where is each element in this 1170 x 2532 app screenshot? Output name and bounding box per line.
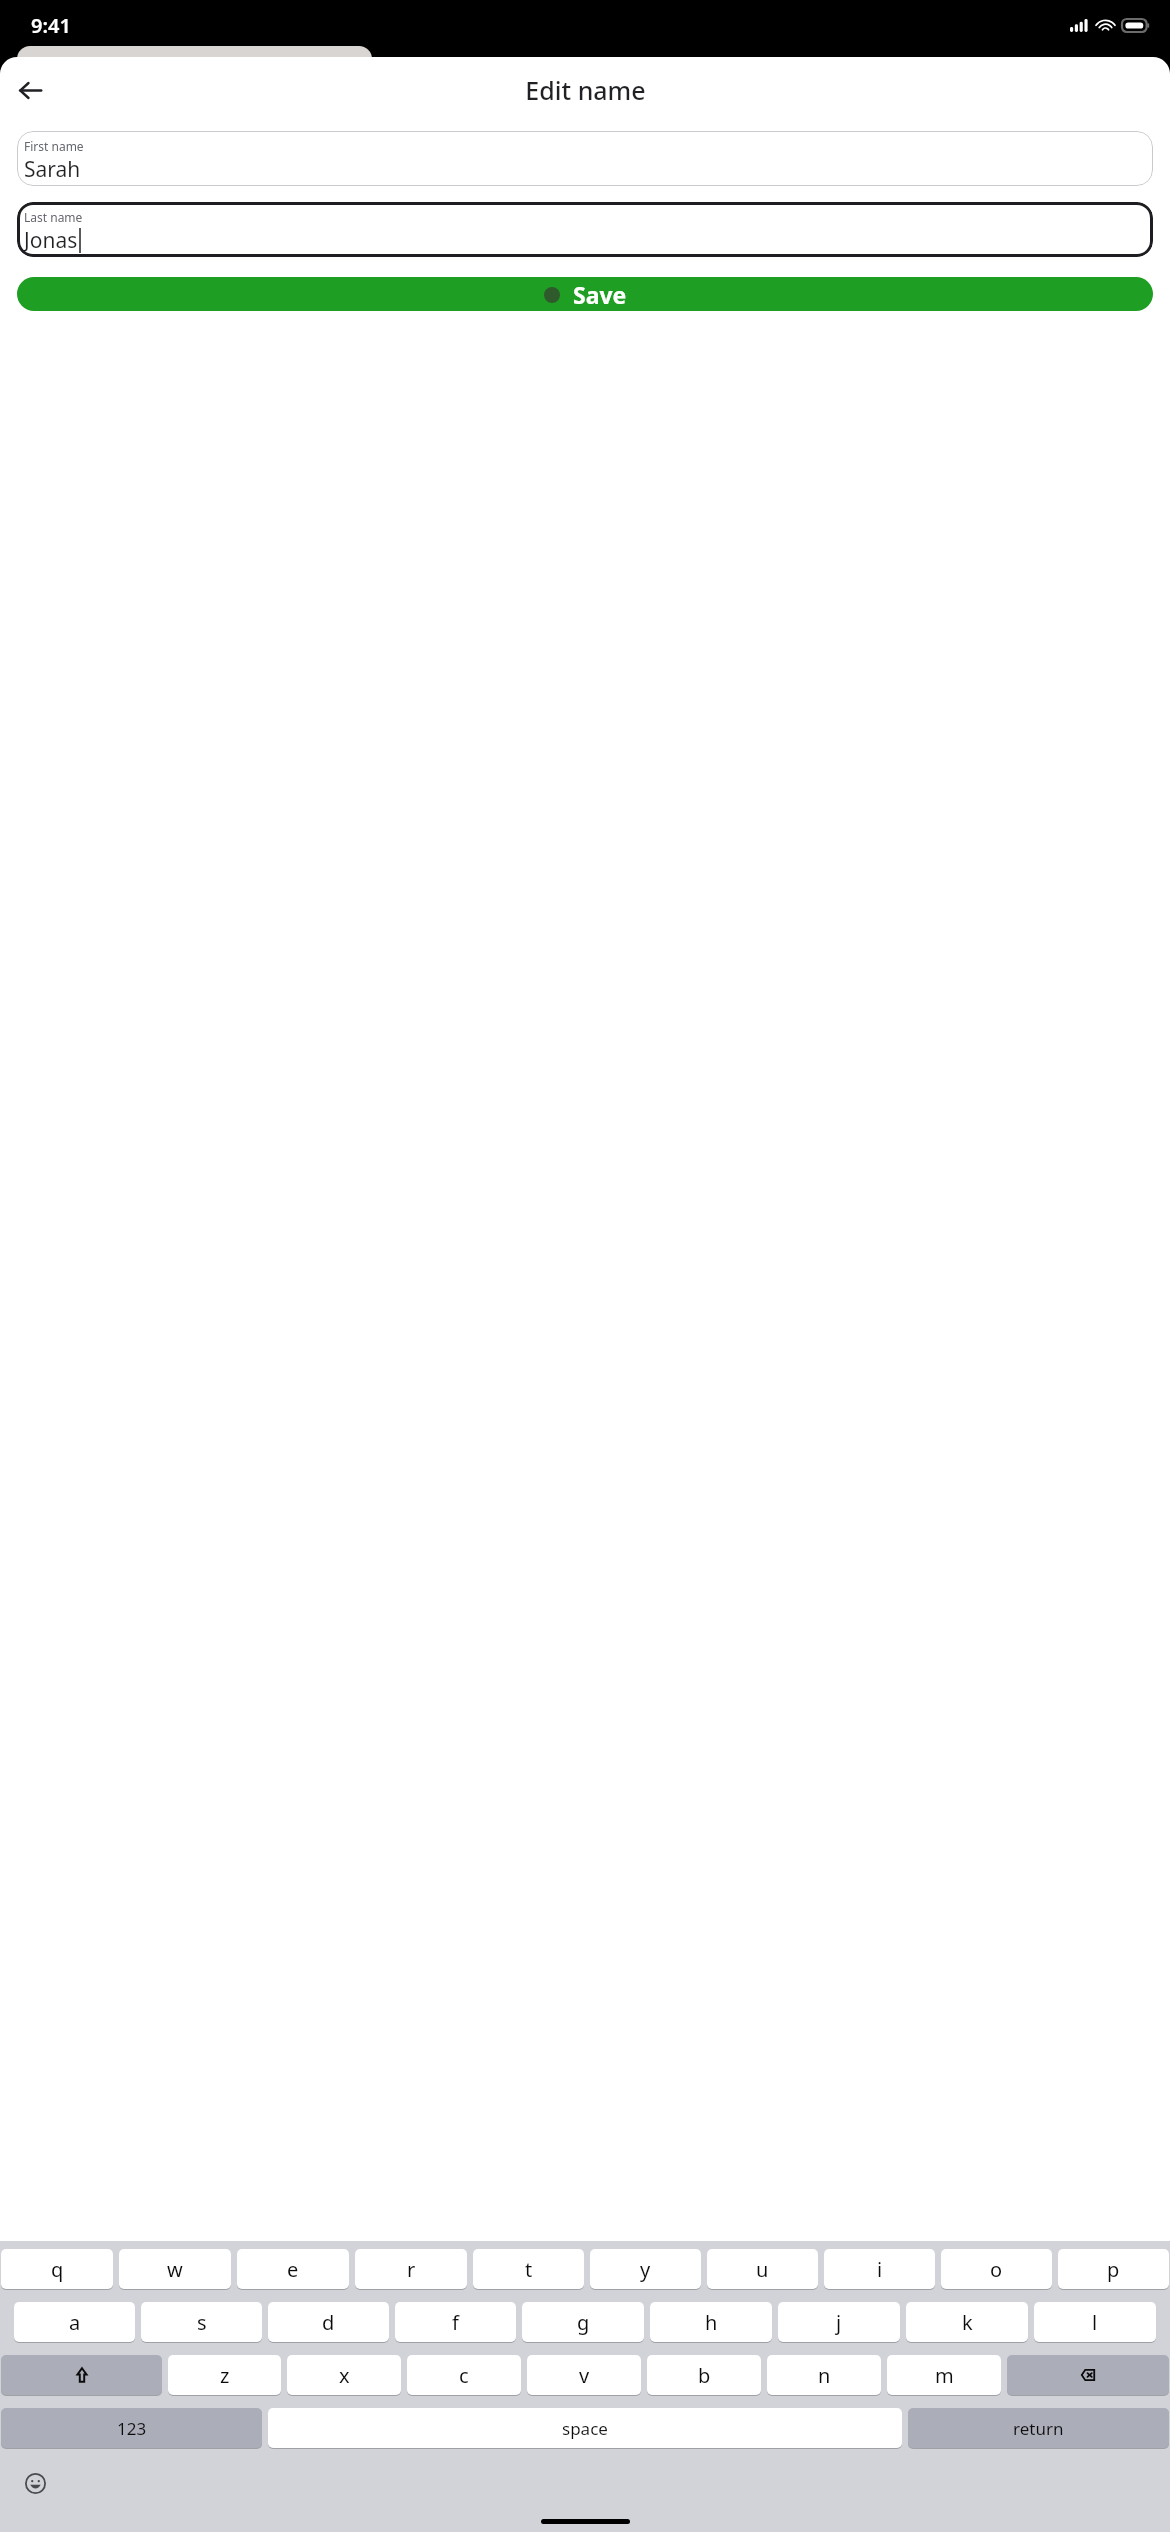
- button[interactable]: i: [824, 2249, 935, 2289]
- staticText: y: [640, 2256, 651, 2283]
- staticText: v: [579, 2362, 590, 2389]
- button[interactable]: x: [287, 2355, 401, 2395]
- staticText: g: [577, 2309, 590, 2336]
- staticText: Jonas: [24, 226, 78, 255]
- staticText: First name: [24, 138, 84, 154]
- staticText: f: [452, 2309, 459, 2336]
- button[interactable]: Save: [17, 277, 1153, 311]
- button[interactable]: e: [237, 2249, 349, 2289]
- button[interactable]: k: [906, 2302, 1028, 2342]
- staticText: w: [167, 2256, 183, 2283]
- button[interactable]: d: [268, 2302, 389, 2342]
- button[interactable]: n: [767, 2355, 881, 2395]
- staticText: m: [935, 2362, 954, 2389]
- staticText: h: [705, 2309, 718, 2336]
- staticText: b: [698, 2362, 711, 2389]
- button[interactable]: q: [1, 2249, 113, 2289]
- staticText: j: [836, 2309, 842, 2336]
- button[interactable]: Back: [5, 65, 55, 115]
- button[interactable]: return: [908, 2408, 1169, 2448]
- staticText: Sarah: [24, 155, 81, 184]
- button[interactable]: c: [407, 2355, 521, 2395]
- button[interactable]: First name: [17, 131, 1153, 186]
- button[interactable]: r: [355, 2249, 467, 2289]
- button[interactable]: o: [941, 2249, 1052, 2289]
- staticText: c: [459, 2362, 469, 2389]
- staticText: return: [1013, 2417, 1064, 2440]
- staticText: x: [339, 2362, 350, 2389]
- button[interactable]: l: [1034, 2302, 1156, 2342]
- button[interactable]: y: [590, 2249, 701, 2289]
- staticText: 123: [117, 2417, 147, 2440]
- button[interactable]: a: [14, 2302, 135, 2342]
- staticText: Last name: [24, 209, 83, 225]
- button[interactable]: f: [395, 2302, 516, 2342]
- staticText: t: [525, 2256, 533, 2283]
- button[interactable]: u: [707, 2249, 818, 2289]
- button[interactable]: g: [522, 2302, 644, 2342]
- staticText: space: [562, 2417, 608, 2440]
- button[interactable]: m: [887, 2355, 1001, 2395]
- staticText: r: [407, 2256, 416, 2283]
- button[interactable]: z: [168, 2355, 281, 2395]
- staticText: p: [1107, 2256, 1120, 2283]
- button[interactable]: space: [268, 2408, 902, 2448]
- staticText: n: [818, 2362, 831, 2389]
- staticText: i: [877, 2256, 883, 2283]
- staticText: q: [51, 2256, 64, 2283]
- staticText: z: [220, 2362, 230, 2389]
- staticText: Save: [573, 279, 627, 310]
- button[interactable]: t: [473, 2249, 584, 2289]
- button[interactable]: Last name: [17, 202, 1153, 257]
- staticText: s: [197, 2309, 207, 2336]
- button[interactable]: Backspace: [1007, 2355, 1169, 2395]
- button[interactable]: s: [141, 2302, 262, 2342]
- staticText: o: [990, 2256, 1003, 2283]
- button[interactable]: p: [1058, 2249, 1169, 2289]
- staticText: 9:41: [31, 12, 71, 39]
- staticText: Edit name: [525, 73, 646, 107]
- button[interactable]: v: [527, 2355, 641, 2395]
- staticText: e: [287, 2256, 299, 2283]
- button[interactable]: w: [119, 2249, 231, 2289]
- button[interactable]: j: [778, 2302, 900, 2342]
- button[interactable]: h: [650, 2302, 772, 2342]
- staticText: a: [69, 2309, 81, 2336]
- button[interactable]: 123: [1, 2408, 262, 2448]
- button[interactable]: b: [647, 2355, 761, 2395]
- button[interactable]: Emoji: [15, 2463, 55, 2503]
- staticText: l: [1092, 2309, 1098, 2336]
- staticText: k: [962, 2309, 973, 2336]
- staticText: u: [756, 2256, 769, 2283]
- staticText: d: [322, 2309, 335, 2336]
- button[interactable]: Shift: [1, 2355, 162, 2395]
